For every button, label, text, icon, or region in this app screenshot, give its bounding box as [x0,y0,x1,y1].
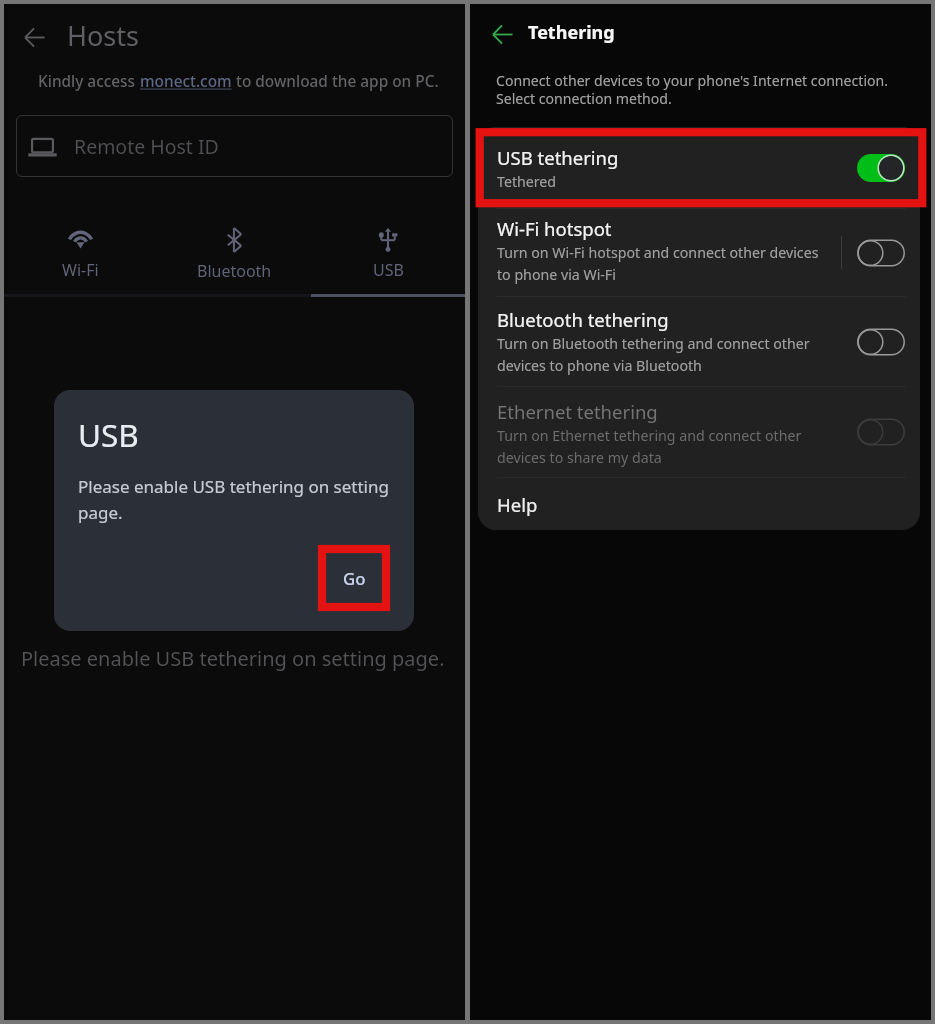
button[interactable]: Ethernet tethering [478,387,920,477]
button[interactable]: Wi-Fi hotspot off [857,238,905,268]
staticText: Remote Host ID [74,133,219,160]
button[interactable]: USB [311,224,465,296]
button[interactable]: Help [478,478,920,530]
button[interactable]: Remote Host ID [16,115,453,177]
staticText: Go [343,567,366,590]
staticText: Help [497,492,538,517]
staticText: Please enable USB tethering on setting p… [78,475,389,524]
button[interactable]: Bluetooth [157,224,311,296]
staticText: Ethernet tethering [497,399,658,424]
button[interactable]: Wi-Fi hotspot [478,209,920,296]
staticText: Bluetooth tethering [497,307,669,332]
button[interactable]: Ethernet tethering off [857,417,905,447]
button[interactable]: USB tethering on [857,153,905,183]
staticText: Please enable USB tethering on setting p… [21,645,445,672]
staticText: Turn on Ethernet tethering and connect o… [497,426,802,467]
staticText: Hosts [67,17,139,54]
staticText: Wi-Fi hotspot [497,216,612,241]
staticText: Connect other devices to your phone's In… [496,71,889,109]
staticText: Tethering [528,20,615,45]
button[interactable]: USB tethering [478,127,920,208]
button[interactable]: Bluetooth tethering off [857,327,905,357]
button[interactable]: Back [482,14,522,54]
staticText: Tethered [497,172,557,191]
staticText: Kindly access [38,71,140,92]
staticText: monect.com [140,71,232,92]
button[interactable]: Bluetooth tethering [478,297,920,386]
staticText: USB [78,413,139,456]
staticText: Wi-Fi [62,259,99,281]
button[interactable]: Go [318,545,391,611]
staticText: Bluetooth [197,260,272,282]
staticText: USB [373,259,404,281]
staticText: Turn on Wi-Fi hotspot and connect other … [497,243,819,284]
staticText: USB tethering [497,145,619,170]
button[interactable]: Wi-Fi [4,224,157,296]
staticText: to download the app on PC. [232,71,439,92]
button[interactable]: Back [14,17,54,57]
staticText: Turn on Bluetooth tethering and connect … [497,334,810,375]
